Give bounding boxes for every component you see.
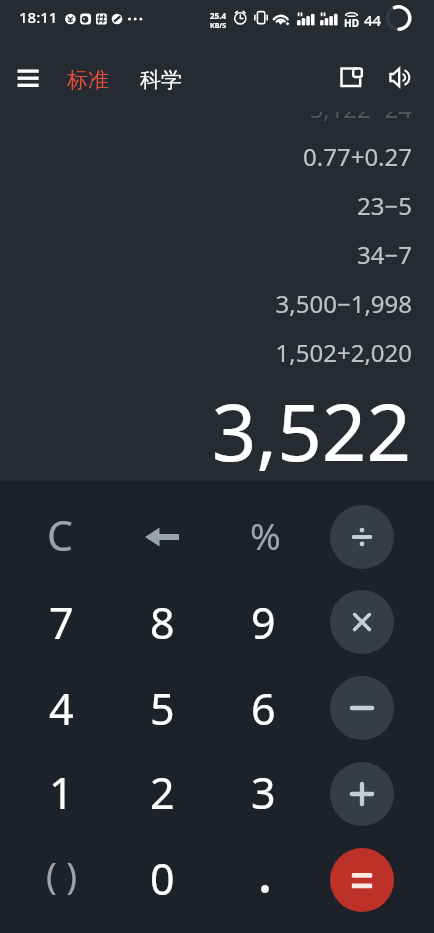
- button[interactable]: 8: [112, 580, 212, 664]
- button[interactable]: Floating window: [332, 58, 371, 97]
- staticText: 科学: [140, 67, 182, 93]
- button[interactable]: Multiply: [330, 590, 394, 654]
- staticText: 44: [364, 10, 382, 30]
- button[interactable]: 7: [11, 580, 111, 664]
- staticText: 3,122−24: [0, 112, 412, 125]
- button[interactable]: Equals: [330, 848, 394, 912]
- button[interactable]: %: [215, 493, 315, 577]
- staticText: 8: [150, 593, 175, 652]
- button[interactable]: Menu: [9, 59, 47, 97]
- staticText: 1,502+2,020: [0, 336, 412, 369]
- staticText: 23−5: [0, 189, 412, 222]
- button[interactable]: Decimal point: [215, 847, 315, 931]
- button[interactable]: ( ): [11, 833, 111, 917]
- staticText: 25.4: [210, 10, 226, 21]
- button[interactable]: 5: [112, 666, 212, 750]
- button[interactable]: Divide: [330, 505, 394, 569]
- staticText: 1: [49, 763, 74, 822]
- staticText: 18:11: [19, 7, 58, 27]
- staticText: 3,522: [0, 378, 411, 481]
- staticText: 5: [150, 679, 175, 738]
- staticText: 标准: [67, 67, 109, 93]
- button[interactable]: Minus: [330, 676, 394, 740]
- staticText: %: [250, 510, 281, 560]
- staticText: 2: [150, 763, 175, 822]
- staticText: 4: [49, 679, 74, 738]
- button[interactable]: Sound: [381, 58, 420, 97]
- button[interactable]: Plus: [330, 762, 394, 826]
- button[interactable]: 6: [213, 666, 313, 750]
- button[interactable]: 3: [213, 750, 313, 834]
- staticText: 0: [150, 849, 175, 908]
- staticText: 3: [251, 763, 276, 822]
- button[interactable]: 0: [112, 836, 212, 920]
- button[interactable]: 2: [112, 750, 212, 834]
- button[interactable]: 9: [213, 580, 313, 664]
- staticText: 3,500−1,998: [0, 287, 412, 320]
- staticText: KB/S: [210, 21, 227, 31]
- button[interactable]: Backspace: [112, 495, 212, 579]
- staticText: 9: [251, 593, 276, 652]
- staticText: HD: [344, 16, 359, 30]
- staticText: 7: [49, 593, 74, 652]
- staticText: 0.77+0.27: [0, 140, 412, 173]
- button[interactable]: 1: [11, 750, 111, 834]
- staticText: 34−7: [0, 238, 412, 271]
- staticText: C: [47, 507, 73, 563]
- staticText: ( ): [46, 851, 77, 900]
- button[interactable]: 标准: [58, 59, 118, 101]
- button[interactable]: 科学: [131, 59, 191, 101]
- button[interactable]: C: [10, 493, 110, 577]
- staticText: 6: [251, 679, 276, 738]
- button[interactable]: 4: [11, 666, 111, 750]
